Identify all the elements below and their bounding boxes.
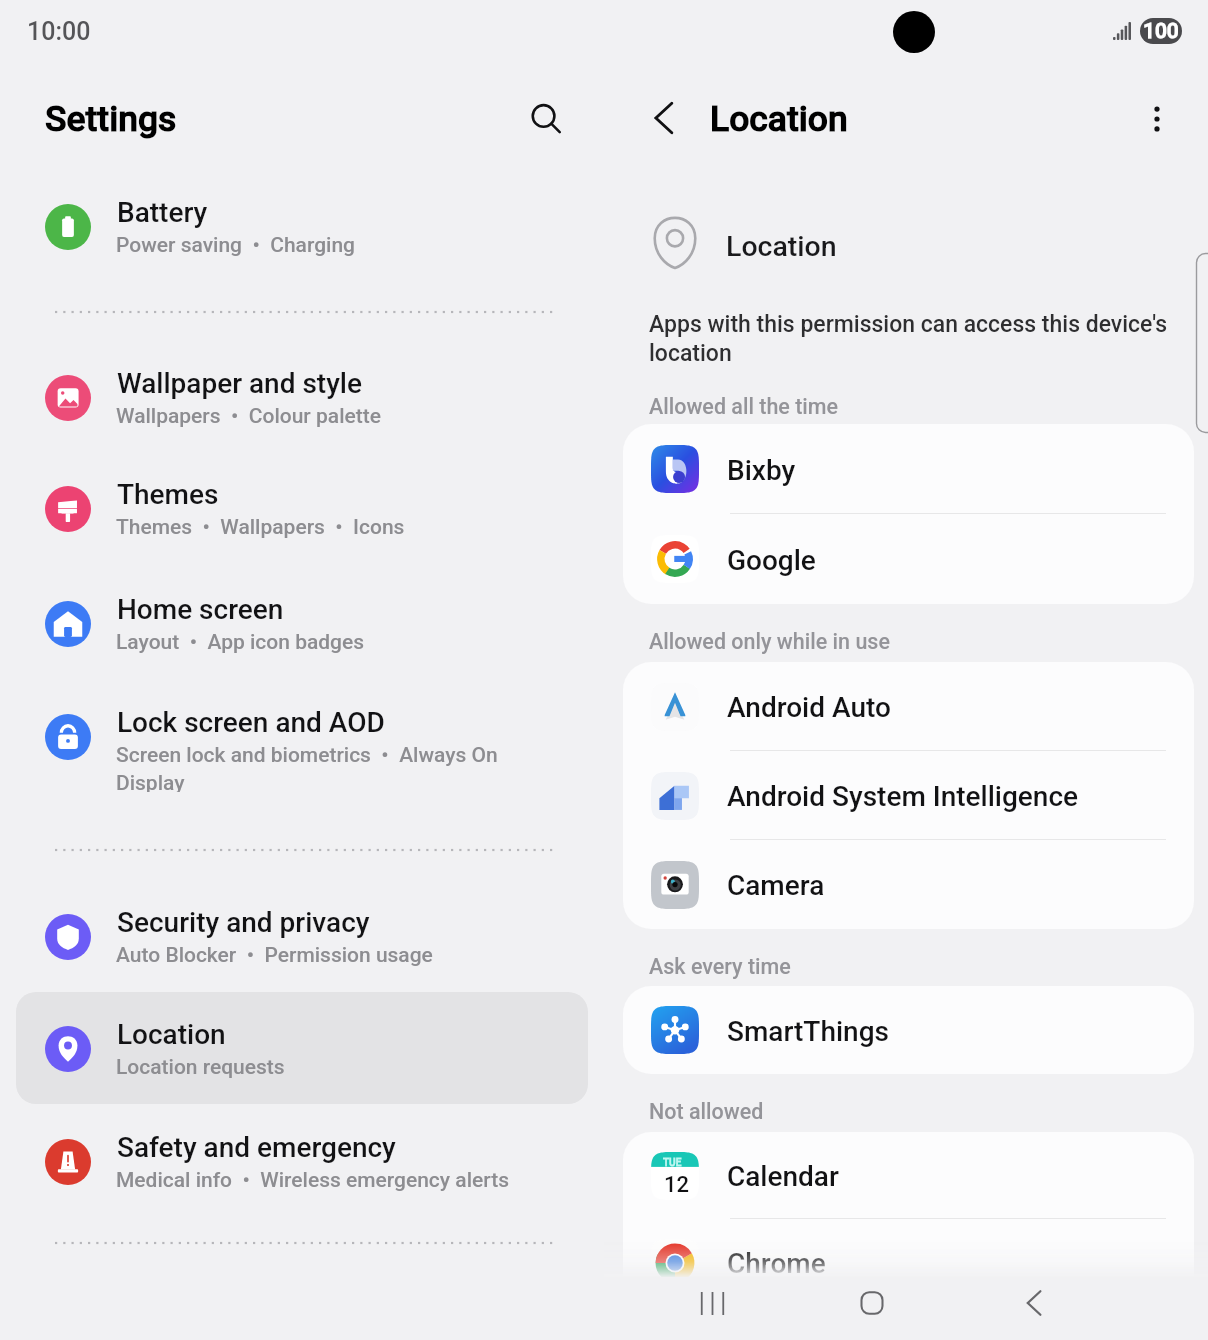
staticText: 10:00 [27, 17, 91, 46]
staticText: Settings [45, 98, 177, 140]
staticText: Wallpaper and style [117, 367, 362, 400]
staticText: Location requests [116, 1055, 586, 1080]
staticText: SmartThings [727, 1015, 889, 1048]
staticText: Lock screen and AOD [117, 706, 385, 739]
button[interactable]: Home [843, 1274, 901, 1332]
staticText: 100 [1143, 19, 1179, 44]
button[interactable]: Google [623, 514, 1194, 604]
button[interactable]: Recents [683, 1274, 741, 1332]
staticText: Location [710, 98, 848, 140]
button[interactable]: TUE [623, 1132, 1194, 1219]
staticText: Themes • Wallpapers • Icons [116, 515, 586, 540]
button[interactable]: Security and privacy [16, 880, 588, 992]
button[interactable]: Location [16, 992, 588, 1104]
button[interactable]: More options [1127, 89, 1187, 149]
staticText: Power saving • Charging [116, 233, 586, 258]
staticText: Bixby [727, 454, 796, 487]
button[interactable]: Home screen [16, 567, 588, 679]
staticText: Security and privacy [117, 906, 370, 939]
button[interactable]: Themes [16, 452, 588, 564]
button[interactable]: Bixby [623, 424, 1194, 514]
staticText: Layout • App icon badges [116, 630, 586, 655]
staticText: Android Auto [727, 691, 891, 724]
staticText: Not allowed [649, 1099, 764, 1124]
staticText: Chrome [727, 1247, 826, 1280]
button[interactable]: Safety and emergency [16, 1105, 588, 1217]
staticText: Medical info • Wireless emergency alerts [116, 1168, 586, 1193]
staticText: Google [727, 544, 816, 577]
staticText: Allowed only while in use [649, 629, 890, 654]
staticText: TUE [663, 1157, 682, 1169]
staticText: Apps with this permission can access thi… [649, 311, 1179, 367]
staticText: Home screen [117, 593, 284, 626]
button[interactable]: Chrome [623, 1219, 1194, 1306]
button[interactable]: Back [635, 88, 695, 148]
button[interactable]: SmartThings [623, 986, 1194, 1074]
staticText: Camera [727, 869, 825, 902]
staticText: Android System Intelligence [727, 780, 1079, 813]
staticText: Battery [117, 196, 208, 229]
staticText: Ask every time [649, 954, 791, 979]
button[interactable]: Android System Intelligence [623, 751, 1194, 840]
button[interactable]: Battery [16, 170, 588, 282]
staticText: Location [726, 230, 837, 263]
staticText: Themes [117, 478, 219, 511]
button[interactable]: Android Auto [623, 662, 1194, 751]
button[interactable]: Camera [623, 840, 1194, 929]
button[interactable]: Search [517, 89, 577, 149]
button[interactable]: Back [1006, 1274, 1064, 1332]
staticText: Auto Blocker • Permission usage [116, 943, 586, 968]
staticText: Calendar [727, 1160, 839, 1193]
staticText: Location [117, 1018, 226, 1051]
button[interactable]: Lock screen and AOD [16, 680, 588, 792]
staticText: Allowed all the time [649, 394, 839, 419]
button[interactable]: Wallpaper and style [16, 341, 588, 453]
staticText: 12 [664, 1172, 690, 1198]
staticText: Wallpapers • Colour palette [116, 404, 586, 429]
staticText: Safety and emergency [117, 1131, 396, 1164]
staticText: Screen lock and biometrics • Always On D… [116, 743, 516, 792]
